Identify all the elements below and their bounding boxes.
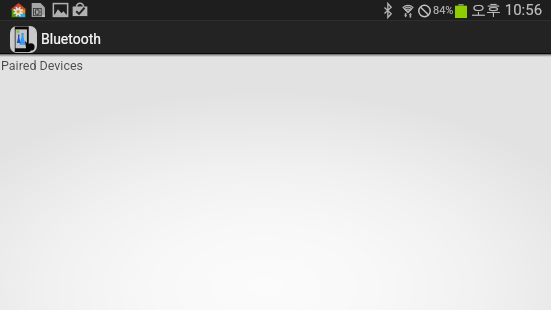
other: Silent mode (418, 4, 431, 18)
button[interactable]: Bluetooth (0, 21, 551, 54)
other: Bluetooth (384, 3, 392, 18)
staticText: Bluetooth (41, 31, 101, 47)
other: Battery 84 percent (455, 4, 467, 18)
other: Wi-Fi (401, 3, 415, 18)
staticText: Paired Devices (1, 58, 84, 73)
staticText: 오후 10:56 (471, 1, 543, 20)
staticText: 84% (433, 4, 454, 17)
